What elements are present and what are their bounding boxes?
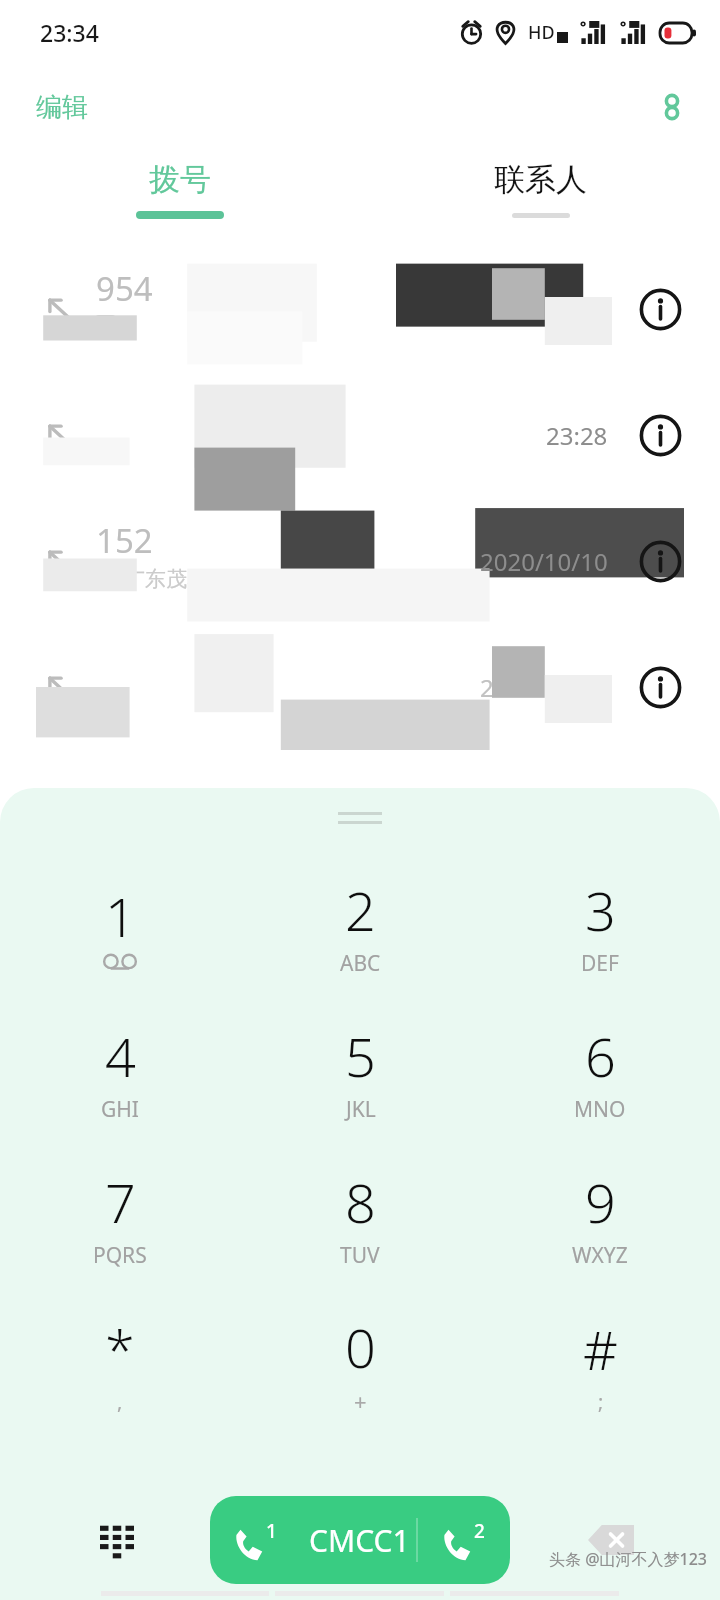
staticText: TUV: [340, 1241, 380, 1270]
staticText: 6: [585, 1019, 616, 1093]
staticText: 152: [96, 518, 153, 563]
button[interactable]: 1: [0, 852, 240, 998]
staticText: 23:28: [546, 419, 608, 452]
button[interactable]: 152: [0, 498, 720, 624]
staticText: CMCC1: [309, 1520, 410, 1561]
staticText: 3:20: [560, 293, 608, 326]
button[interactable]: 5: [240, 998, 480, 1144]
button[interactable]: 7: [0, 1144, 240, 1290]
staticText: 5: [345, 1019, 376, 1093]
staticText: MNO: [574, 1095, 626, 1124]
button[interactable]: 拨号: [0, 150, 360, 246]
staticText: 2: [345, 873, 376, 947]
button[interactable]: 联系人: [360, 150, 720, 246]
staticText: +: [354, 1386, 367, 1416]
staticText: 0: [345, 1310, 376, 1384]
staticText: 广东茂名: [124, 566, 208, 592]
staticText: PQRS: [93, 1241, 147, 1270]
button[interactable]: #: [480, 1290, 720, 1436]
button[interactable]: 8: [240, 1144, 480, 1290]
button[interactable]: 0: [240, 1290, 480, 1436]
staticText: 编辑: [36, 91, 88, 124]
staticText: 954: [96, 266, 153, 311]
button[interactable]: Call details: [632, 533, 688, 589]
staticText: ;: [598, 1388, 604, 1415]
button[interactable]: 1: [210, 1496, 510, 1584]
staticText: 7: [105, 1165, 136, 1239]
staticText: 4: [105, 1019, 136, 1093]
staticText: 拨号: [149, 160, 211, 199]
staticText: 23:34: [40, 17, 99, 48]
staticText: 2020/10/10: [480, 545, 608, 578]
staticText: DEF: [581, 949, 619, 978]
staticText: HD: [528, 20, 555, 45]
staticText: 3: [585, 873, 616, 947]
staticText: 联系人: [494, 160, 587, 199]
button[interactable]: Delete: [580, 1509, 642, 1571]
button[interactable]: *: [0, 1290, 240, 1436]
button[interactable]: 3: [480, 852, 720, 998]
button[interactable]: Keypad: [86, 1509, 148, 1571]
staticText: 2: [474, 1518, 485, 1544]
staticText: 头条 @山河不入梦123: [549, 1548, 708, 1570]
staticText: GHI: [101, 1095, 139, 1124]
staticText: ABC: [340, 949, 381, 978]
button[interactable]: Call details: [632, 659, 688, 715]
staticText: ,: [117, 1388, 123, 1415]
staticText: WXYZ: [572, 1241, 628, 1270]
button[interactable]: Call details: [632, 407, 688, 463]
staticText: *: [105, 1312, 135, 1386]
button[interactable]: 4: [0, 998, 240, 1144]
button[interactable]: 9: [480, 1144, 720, 1290]
button[interactable]: 编辑: [26, 85, 98, 130]
staticText: 8: [345, 1165, 376, 1239]
staticText: 2020/10/10: [480, 671, 608, 704]
staticText: 1: [105, 879, 136, 953]
staticText: JKL: [346, 1095, 376, 1124]
button[interactable]: 954: [0, 246, 720, 372]
button[interactable]: Call details: [632, 281, 688, 337]
staticText: 9: [585, 1165, 616, 1239]
button[interactable]: More options: [646, 81, 698, 133]
button[interactable]: 23:28: [0, 372, 720, 498]
staticText: 1: [266, 1518, 277, 1544]
button[interactable]: 6: [480, 998, 720, 1144]
button[interactable]: 2: [240, 852, 480, 998]
staticText: #: [583, 1312, 618, 1386]
button[interactable]: 2020/10/10: [0, 624, 720, 750]
